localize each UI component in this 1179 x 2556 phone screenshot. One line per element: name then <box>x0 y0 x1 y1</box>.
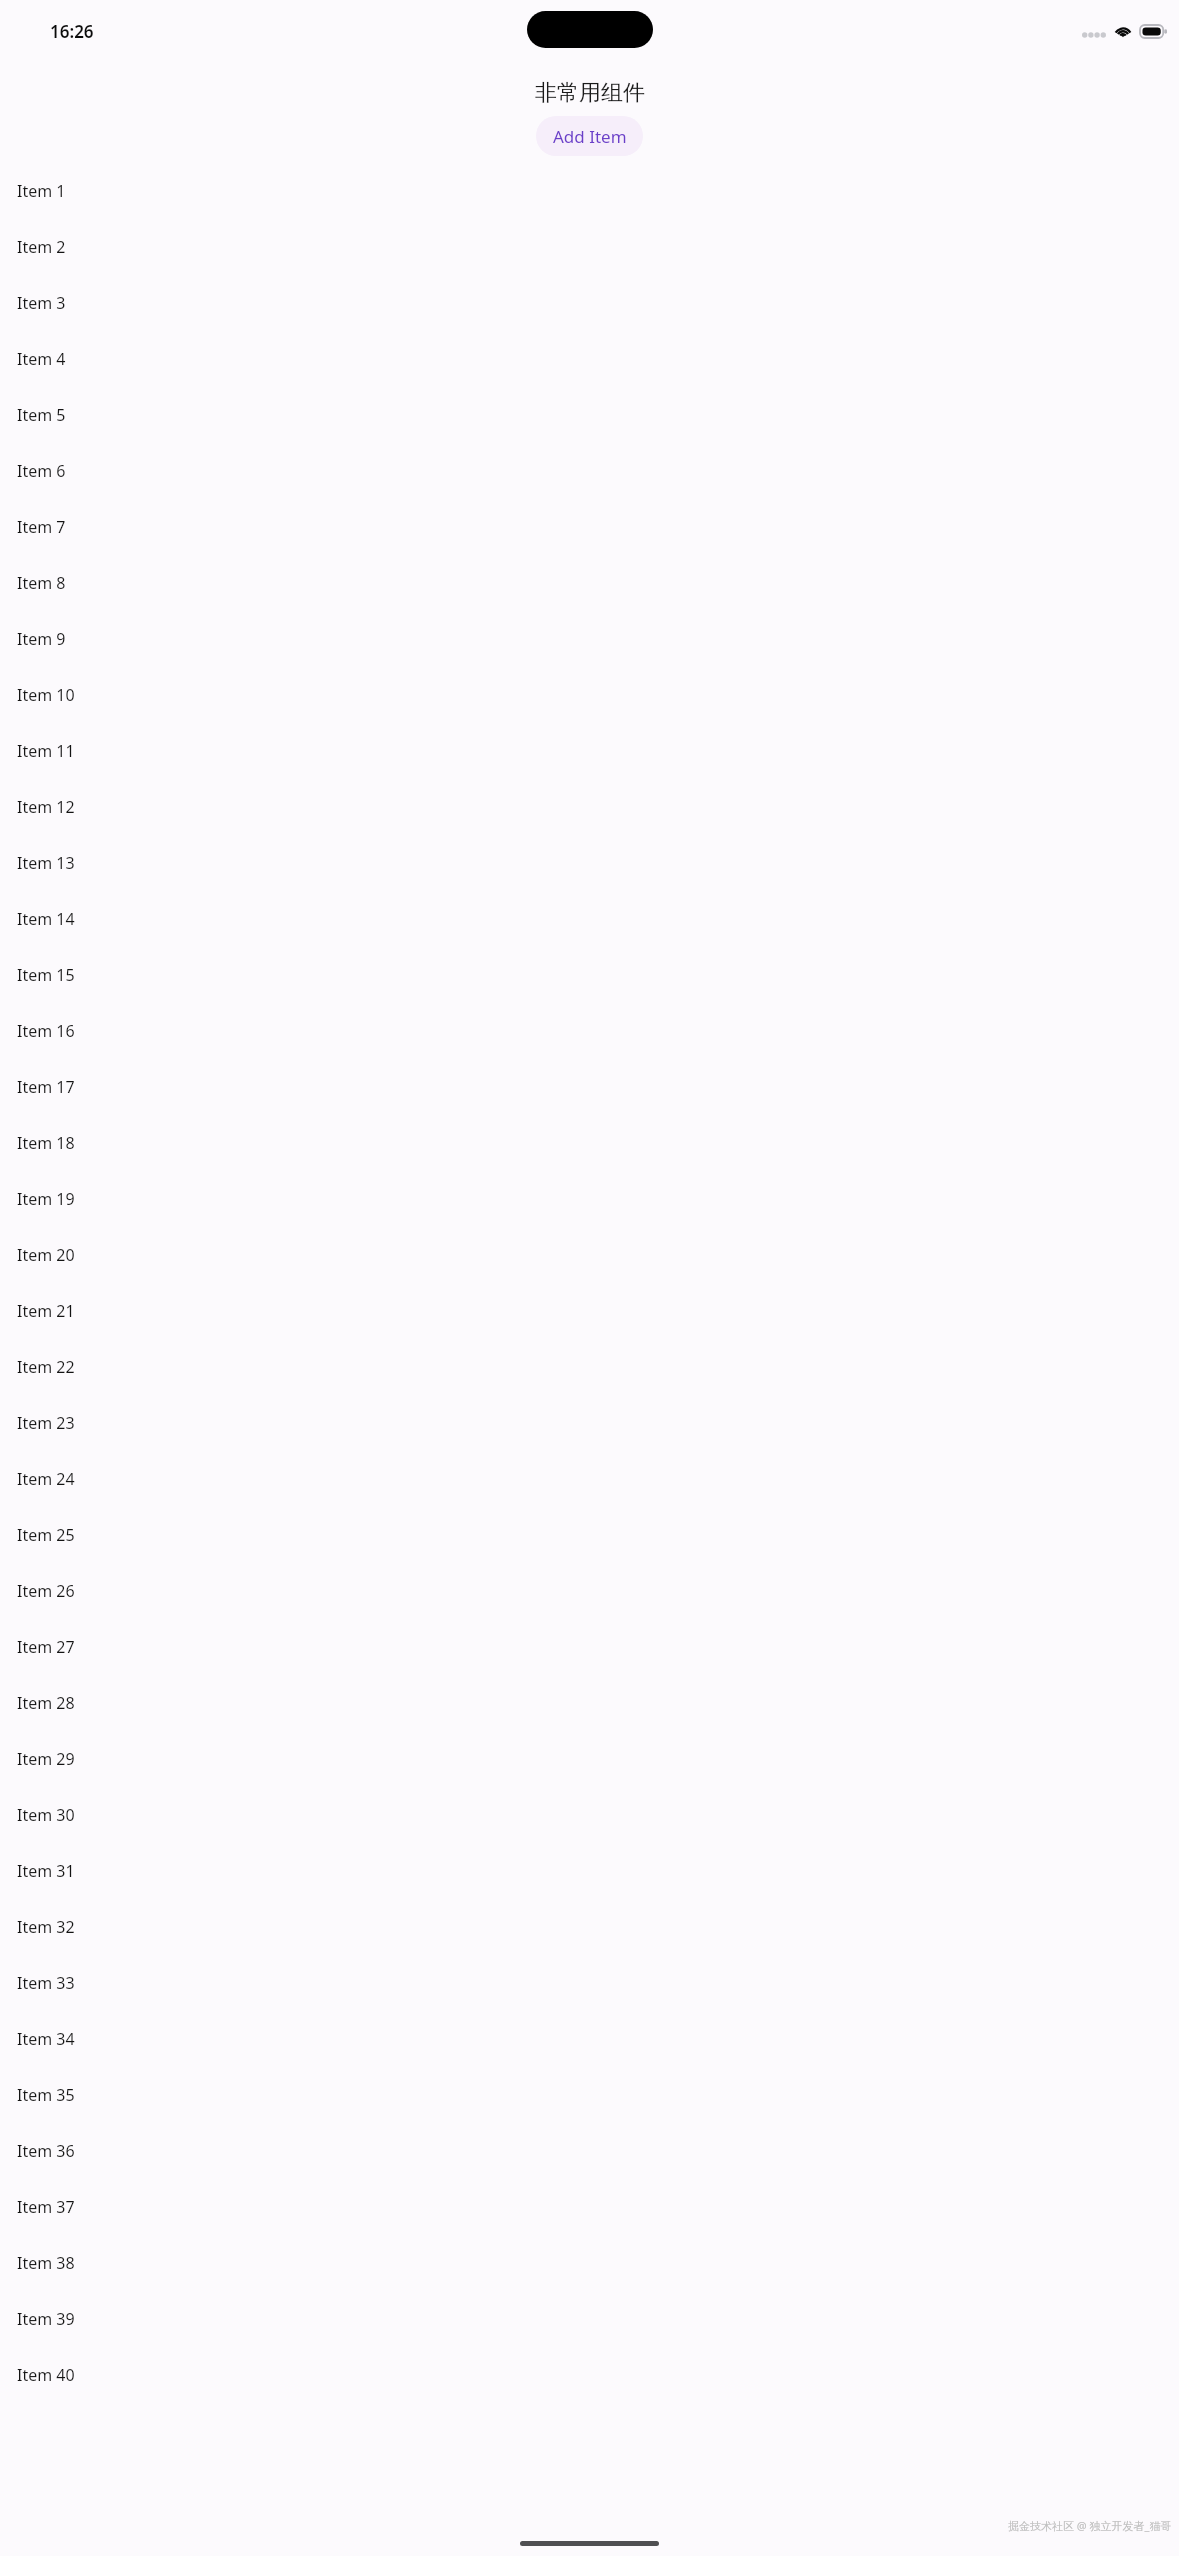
button[interactable]: Item 9 <box>0 611 1179 667</box>
staticText: Item 29 <box>17 1748 75 1770</box>
staticText: Item 3 <box>17 292 66 314</box>
staticText: Item 20 <box>17 1244 75 1266</box>
button[interactable]: Item 16 <box>0 1003 1179 1059</box>
button[interactable]: Item 5 <box>0 387 1179 443</box>
staticText: 16:26 <box>50 20 94 43</box>
button[interactable]: Item 7 <box>0 499 1179 555</box>
button[interactable]: Item 36 <box>0 2123 1179 2179</box>
button[interactable]: Item 26 <box>0 1563 1179 1619</box>
button[interactable]: Item 35 <box>0 2067 1179 2123</box>
staticText: Item 1 <box>17 180 66 202</box>
staticText: Item 8 <box>17 572 66 594</box>
button[interactable]: Item 28 <box>0 1675 1179 1731</box>
button[interactable]: Item 21 <box>0 1283 1179 1339</box>
staticText: Item 28 <box>17 1692 75 1714</box>
button[interactable]: Add Item <box>536 116 643 156</box>
button[interactable]: Item 13 <box>0 835 1179 891</box>
staticText: Add Item <box>553 125 627 148</box>
staticText: Item 23 <box>17 1412 75 1434</box>
button[interactable]: Item 11 <box>0 723 1179 779</box>
staticText: Item 39 <box>17 2308 75 2330</box>
staticText: Item 2 <box>17 236 66 258</box>
staticText: Item 40 <box>17 2364 75 2386</box>
button[interactable]: Item 23 <box>0 1395 1179 1451</box>
staticText: Item 17 <box>17 1076 75 1098</box>
staticText: Item 7 <box>17 516 66 538</box>
staticText: Item 4 <box>17 348 66 370</box>
button[interactable]: Item 30 <box>0 1787 1179 1843</box>
staticText: Item 31 <box>17 1860 75 1882</box>
staticText: Item 24 <box>17 1468 75 1490</box>
staticText: Item 30 <box>17 1804 75 1826</box>
button[interactable]: Item 1 <box>0 163 1179 219</box>
button[interactable]: Item 4 <box>0 331 1179 387</box>
staticText: 掘金技术社区 @ 独立开发者_猫哥 <box>1008 2518 1172 2533</box>
staticText: Item 13 <box>17 852 75 874</box>
other: Wi-Fi <box>1114 25 1132 38</box>
button[interactable]: Item 40 <box>0 2347 1179 2403</box>
staticText: Item 10 <box>17 684 75 706</box>
button[interactable]: Item 12 <box>0 779 1179 835</box>
button[interactable]: Item 19 <box>0 1171 1179 1227</box>
button[interactable]: Item 39 <box>0 2291 1179 2347</box>
staticText: Item 32 <box>17 1916 75 1938</box>
button[interactable]: Item 14 <box>0 891 1179 947</box>
button[interactable]: Item 34 <box>0 2011 1179 2067</box>
staticText: Item 37 <box>17 2196 75 2218</box>
staticText: Item 26 <box>17 1580 75 1602</box>
staticText: Item 21 <box>17 1300 75 1322</box>
staticText: Item 15 <box>17 964 75 986</box>
staticText: Item 36 <box>17 2140 75 2162</box>
staticText: Item 14 <box>17 908 75 930</box>
button[interactable]: Item 32 <box>0 1899 1179 1955</box>
staticText: Item 34 <box>17 2028 75 2050</box>
staticText: Item 18 <box>17 1132 75 1154</box>
other: Battery <box>1140 25 1167 38</box>
button[interactable]: Item 38 <box>0 2235 1179 2291</box>
button[interactable]: Item 18 <box>0 1115 1179 1171</box>
button[interactable]: Item 29 <box>0 1731 1179 1787</box>
staticText: Item 35 <box>17 2084 75 2106</box>
staticText: Item 6 <box>17 460 66 482</box>
button[interactable]: Item 27 <box>0 1619 1179 1675</box>
staticText: Item 22 <box>17 1356 75 1378</box>
staticText: Item 11 <box>17 740 75 762</box>
staticText: Item 12 <box>17 796 75 818</box>
staticText: Item 5 <box>17 404 66 426</box>
staticText: Item 25 <box>17 1524 75 1546</box>
button[interactable]: Item 20 <box>0 1227 1179 1283</box>
button[interactable]: Item 33 <box>0 1955 1179 2011</box>
staticText: Item 9 <box>17 628 66 650</box>
staticText: Item 27 <box>17 1636 75 1658</box>
button[interactable]: Item 8 <box>0 555 1179 611</box>
button[interactable]: Item 25 <box>0 1507 1179 1563</box>
button[interactable]: Item 24 <box>0 1451 1179 1507</box>
button[interactable]: Item 3 <box>0 275 1179 331</box>
button[interactable]: Item 6 <box>0 443 1179 499</box>
button[interactable]: Item 2 <box>0 219 1179 275</box>
button[interactable]: Item 37 <box>0 2179 1179 2235</box>
staticText: Item 38 <box>17 2252 75 2274</box>
button[interactable]: Item 15 <box>0 947 1179 1003</box>
button[interactable]: Item 10 <box>0 667 1179 723</box>
staticText: Item 19 <box>17 1188 75 1210</box>
button[interactable]: Item 31 <box>0 1843 1179 1899</box>
staticText: Item 16 <box>17 1020 75 1042</box>
staticText: Item 33 <box>17 1972 75 1994</box>
button[interactable]: Item 17 <box>0 1059 1179 1115</box>
other: Cellular signal <box>1080 27 1106 37</box>
staticText: 非常用组件 <box>535 79 645 107</box>
button[interactable]: Item 22 <box>0 1339 1179 1395</box>
